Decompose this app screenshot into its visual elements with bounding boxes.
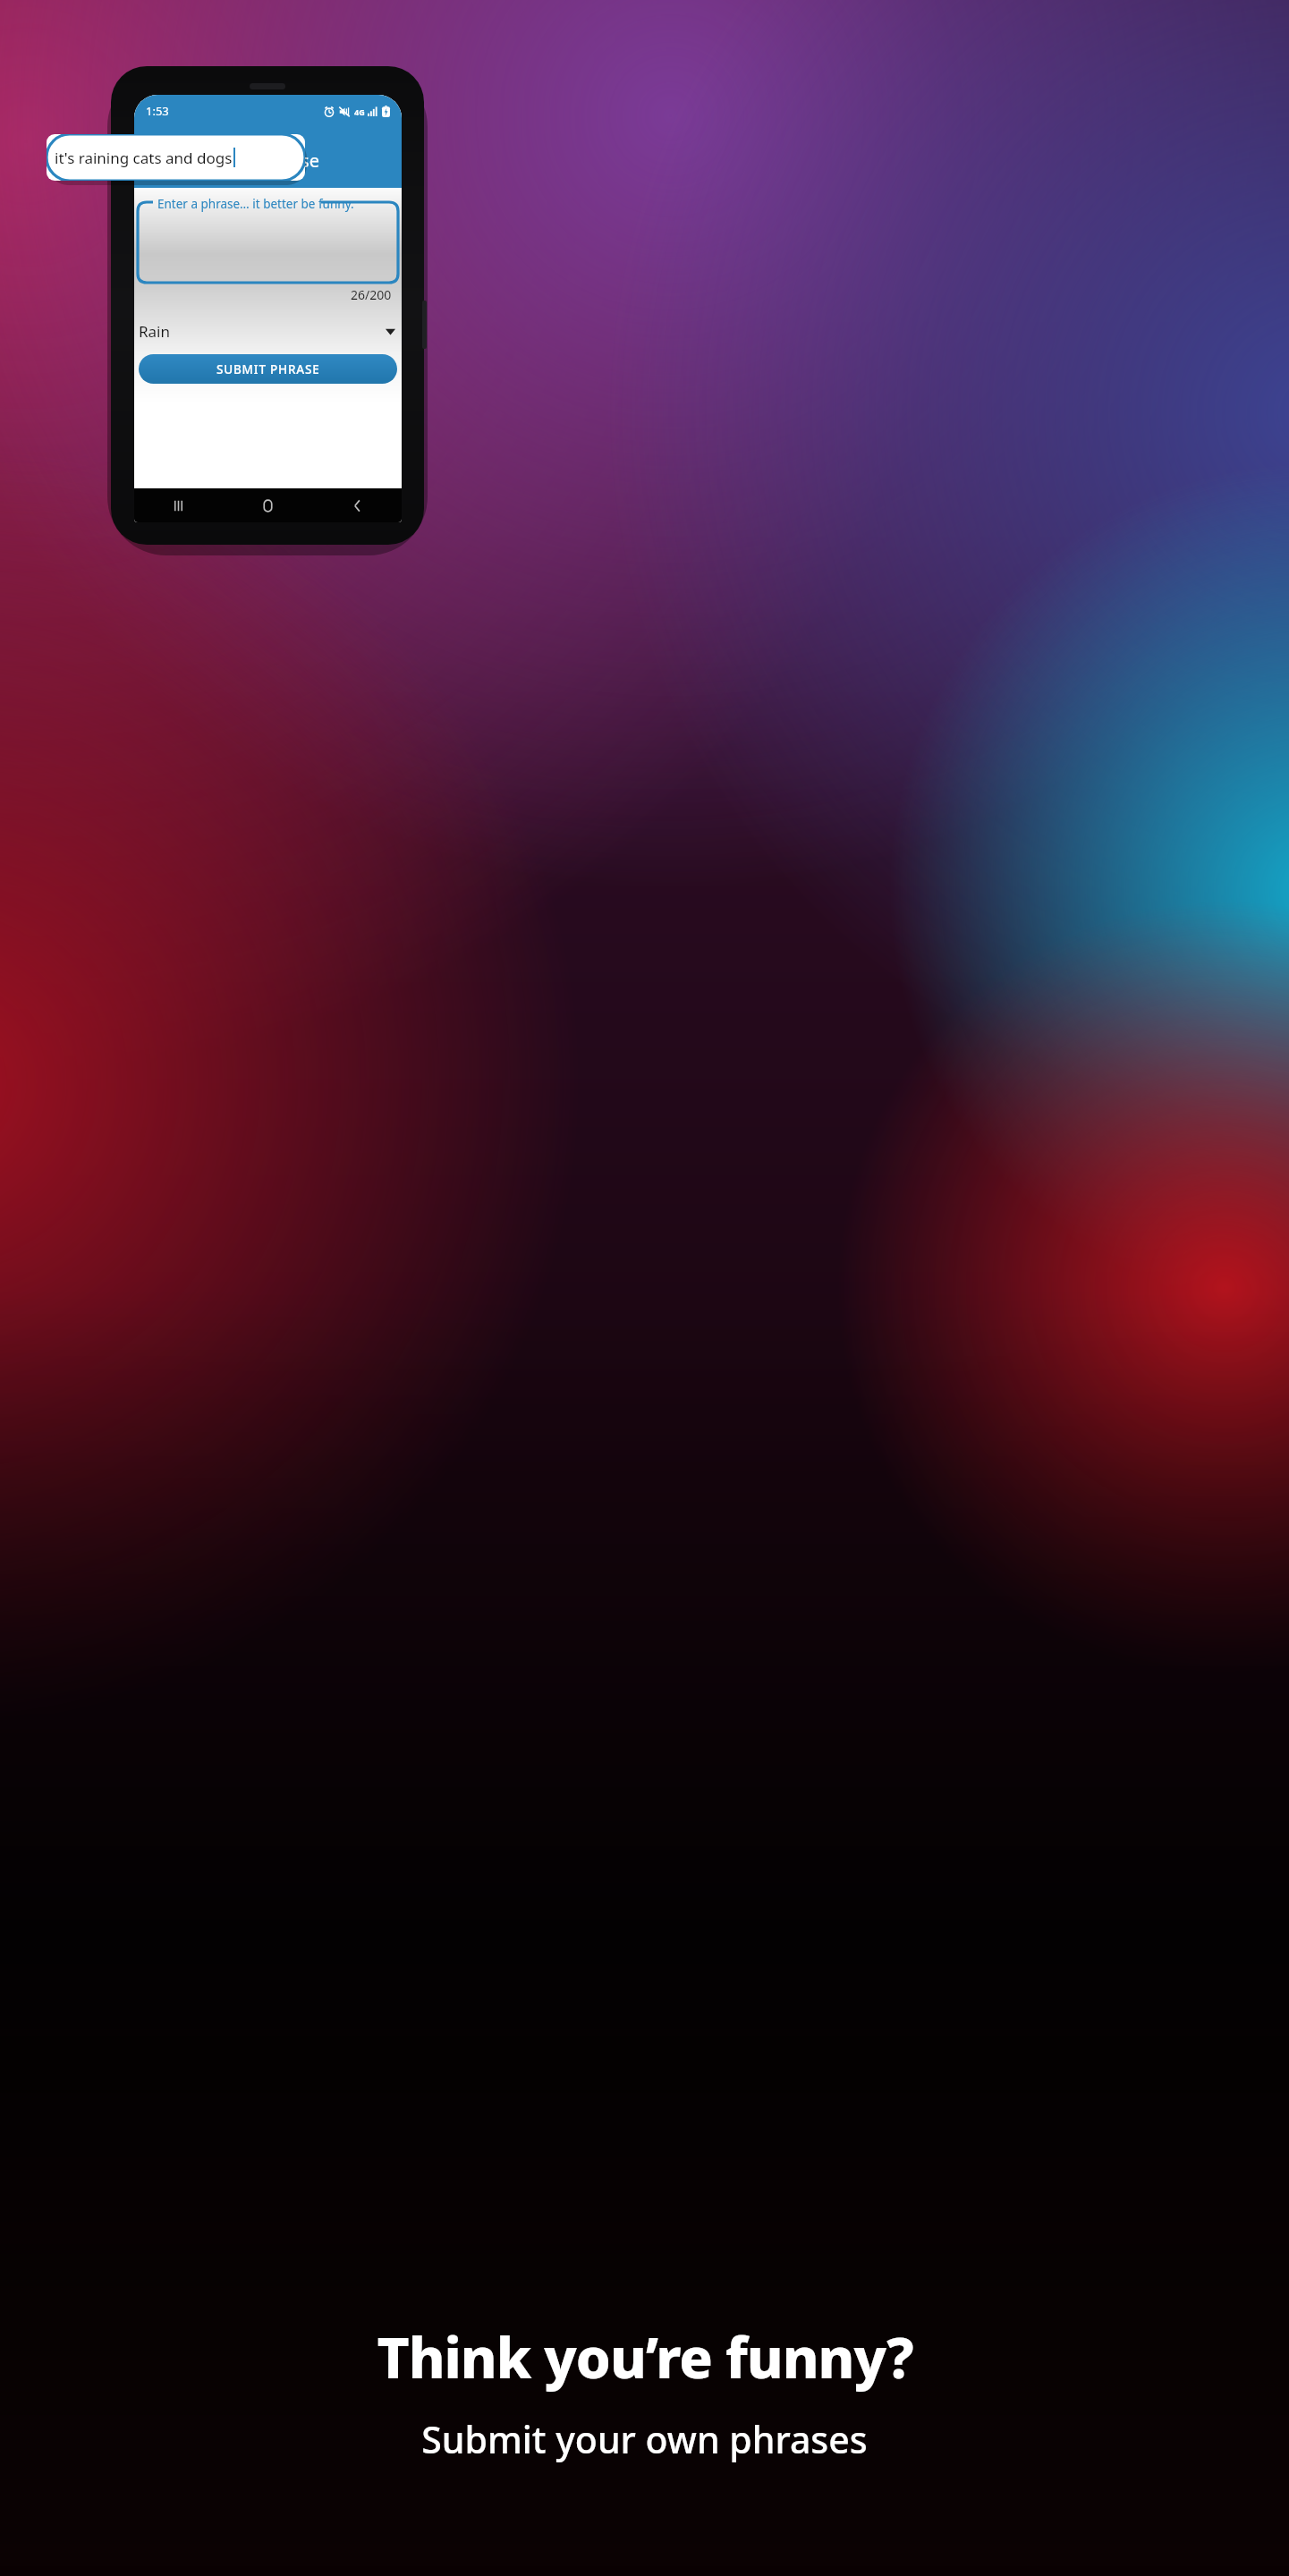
button[interactable]: SUBMIT PHRASE [139, 354, 397, 384]
staticText: Rain [139, 321, 171, 342]
staticText: Think you’re funny? [377, 2319, 913, 2394]
button[interactable]: Back [312, 488, 402, 522]
button[interactable]: Rain [139, 315, 397, 347]
staticText: 26/200 [351, 286, 392, 303]
staticText: it's raining cats and dogs [55, 148, 233, 168]
staticText: SUBMIT PHRASE [216, 361, 320, 377]
staticText: Submit your own phrases [421, 2414, 868, 2464]
staticText: 4G [354, 106, 365, 117]
staticText: 1:53 [146, 103, 169, 119]
staticText: Enter a phrase… it better be funny. [157, 196, 354, 212]
staticText: Submit a phrase [182, 148, 319, 173]
button[interactable]: Back [140, 140, 179, 180]
button[interactable]: Home [223, 488, 312, 522]
button[interactable]: Recents [134, 488, 223, 522]
